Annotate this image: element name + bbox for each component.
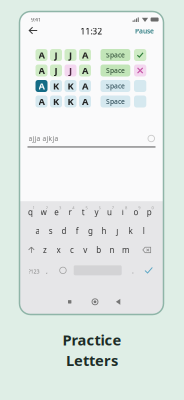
- staticText: Space: [106, 66, 125, 75]
- staticText: s: [49, 226, 53, 236]
- staticText: Pause: [135, 27, 154, 35]
- staticText: Letters: [66, 350, 118, 370]
- staticText: Practice: [62, 330, 121, 349]
- staticText: 11:32: [80, 26, 102, 37]
- staticText: r: [68, 207, 71, 217]
- staticText: n: [110, 245, 115, 255]
- staticText: b: [96, 245, 101, 255]
- staticText: t: [82, 207, 85, 217]
- staticText: 9: [138, 205, 140, 210]
- staticText: 6: [99, 205, 101, 210]
- staticText: J: [54, 64, 57, 77]
- staticText: ,: [46, 266, 48, 275]
- staticText: u: [107, 207, 112, 217]
- staticText: i: [122, 207, 124, 217]
- staticText: z: [43, 245, 47, 255]
- staticText: K: [67, 95, 73, 108]
- staticText: m: [122, 245, 129, 255]
- staticText: K: [53, 95, 59, 108]
- staticText: q: [28, 207, 33, 217]
- staticText: 3: [59, 205, 61, 210]
- staticText: 8: [125, 205, 127, 210]
- staticText: A: [82, 95, 88, 108]
- staticText: 4: [72, 205, 74, 210]
- staticText: ajja ajkja: [28, 134, 58, 143]
- staticText: 2: [46, 205, 48, 210]
- staticText: y: [94, 207, 98, 217]
- staticText: A: [38, 49, 44, 61]
- staticText: Space: [106, 51, 125, 59]
- staticText: 1: [33, 205, 35, 210]
- staticText: w: [41, 207, 47, 217]
- staticText: K: [53, 80, 59, 92]
- staticText: A: [82, 80, 88, 92]
- staticText: j: [116, 226, 118, 236]
- staticText: A: [38, 95, 44, 108]
- staticText: c: [70, 245, 74, 255]
- staticText: d: [61, 226, 66, 236]
- staticText: J: [69, 64, 72, 77]
- staticText: J: [69, 49, 72, 61]
- staticText: 0: [151, 205, 153, 210]
- staticText: A: [82, 49, 88, 61]
- button[interactable]: Back: [27, 24, 39, 36]
- staticText: A: [38, 80, 44, 92]
- staticText: p: [147, 207, 152, 217]
- staticText: a: [35, 226, 39, 236]
- staticText: o: [133, 207, 138, 217]
- staticText: Space: [106, 82, 125, 90]
- staticText: ?123: [29, 268, 40, 275]
- staticText: x: [56, 245, 60, 255]
- staticText: J: [54, 49, 57, 61]
- staticText: A: [38, 64, 44, 77]
- staticText: h: [101, 226, 106, 236]
- staticText: Space: [106, 97, 125, 106]
- staticText: .: [132, 266, 134, 275]
- staticText: g: [88, 226, 93, 236]
- staticText: 5: [85, 205, 87, 210]
- staticText: e: [54, 207, 59, 217]
- button[interactable]: Pause: [134, 26, 154, 36]
- staticText: l: [143, 226, 145, 236]
- staticText: f: [76, 226, 79, 236]
- staticText: k: [128, 226, 132, 236]
- staticText: v: [83, 245, 87, 255]
- staticText: 7: [112, 205, 114, 210]
- staticText: K: [67, 80, 73, 92]
- staticText: 9:41: [31, 16, 41, 23]
- staticText: A: [82, 64, 88, 77]
